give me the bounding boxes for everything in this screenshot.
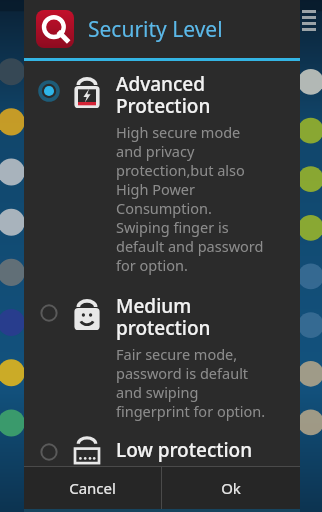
staticText: Ok xyxy=(221,478,241,498)
button[interactable]: Medium protection xyxy=(24,293,300,421)
staticText: Low protection xyxy=(116,437,253,463)
staticText: Advanced Protection xyxy=(116,71,211,119)
other: Menu xyxy=(302,10,316,31)
button[interactable]: Cancel xyxy=(24,467,161,509)
staticText: High secure mode and privacy protection,… xyxy=(116,122,264,275)
button[interactable]: Ok xyxy=(162,467,300,509)
button[interactable]: Advanced Protection xyxy=(24,71,300,275)
button[interactable]: Low protection xyxy=(24,437,300,466)
staticText: Medium protection xyxy=(116,293,211,341)
staticText: Cancel xyxy=(69,478,116,498)
staticText: Fair secure mode, password is default an… xyxy=(116,344,266,421)
staticText: Security Level xyxy=(88,15,223,44)
